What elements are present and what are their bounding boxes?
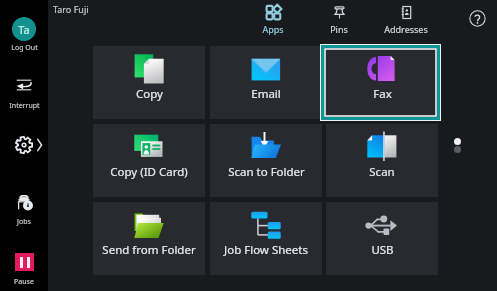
- button[interactable]: Pins: [315, 5, 363, 35]
- button[interactable]: Email: [210, 46, 322, 119]
- button[interactable]: Interrupt: [0, 78, 48, 111]
- staticText: Scan: [369, 164, 395, 180]
- staticText: Pause: [14, 277, 34, 287]
- button[interactable]: Scan: [326, 124, 438, 197]
- button[interactable]: Ta: [0, 17, 48, 53]
- button[interactable]: Addresses: [382, 5, 430, 35]
- staticText: Jobs: [17, 217, 31, 227]
- staticText: Send from Folder: [102, 242, 196, 258]
- button[interactable]: Fax: [326, 46, 438, 119]
- staticText: Addresses: [384, 23, 428, 35]
- staticText: Copy: [136, 86, 163, 102]
- button[interactable]: Jobs: [0, 195, 48, 227]
- staticText: Interrupt: [9, 101, 40, 111]
- staticText: Email: [251, 86, 281, 102]
- staticText: Scan to Folder: [228, 164, 305, 180]
- staticText: Fax: [373, 86, 392, 102]
- button[interactable]: Scan to Folder: [210, 124, 322, 197]
- staticText: Taro Fuji: [53, 3, 89, 15]
- staticText: Job Flow Sheets: [224, 242, 308, 258]
- button[interactable]: Job Flow Sheets: [210, 202, 322, 275]
- button[interactable]: Help: [469, 10, 486, 27]
- button[interactable]: Copy: [93, 46, 205, 119]
- button[interactable]: Apps: [249, 5, 297, 35]
- button[interactable]: Copy (ID Card): [93, 124, 205, 197]
- staticText: USB: [371, 242, 394, 258]
- staticText: Copy (ID Card): [110, 164, 188, 180]
- staticText: Ta: [18, 22, 30, 37]
- button[interactable]: Pause: [0, 253, 48, 287]
- staticText: Apps: [262, 23, 284, 35]
- button[interactable]: USB: [326, 202, 438, 275]
- staticText: Pins: [330, 23, 348, 35]
- staticText: Log Out: [11, 43, 38, 53]
- button[interactable]: Settings: [0, 135, 48, 155]
- button[interactable]: Send from Folder: [93, 202, 205, 275]
